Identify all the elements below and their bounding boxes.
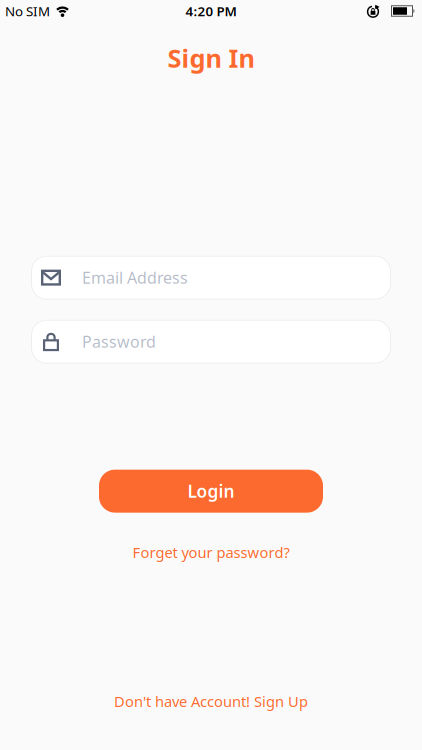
staticText: Forget your password?	[132, 543, 289, 562]
staticText: No SIM	[5, 2, 50, 20]
staticText: Password	[82, 331, 156, 352]
staticText: Don't have Account! Sign Up	[114, 691, 308, 711]
button[interactable]: Login	[99, 470, 323, 513]
staticText: 4:20 PM	[185, 2, 236, 20]
staticText: Sign In	[167, 41, 254, 75]
button[interactable]: Password	[31, 320, 391, 364]
button[interactable]: Email Address	[31, 256, 391, 300]
staticText: Email Address	[82, 267, 188, 288]
staticText: Login	[187, 480, 234, 503]
button[interactable]: Don't have Account! Sign Up	[114, 691, 308, 711]
button[interactable]: Forget your password?	[132, 543, 289, 562]
